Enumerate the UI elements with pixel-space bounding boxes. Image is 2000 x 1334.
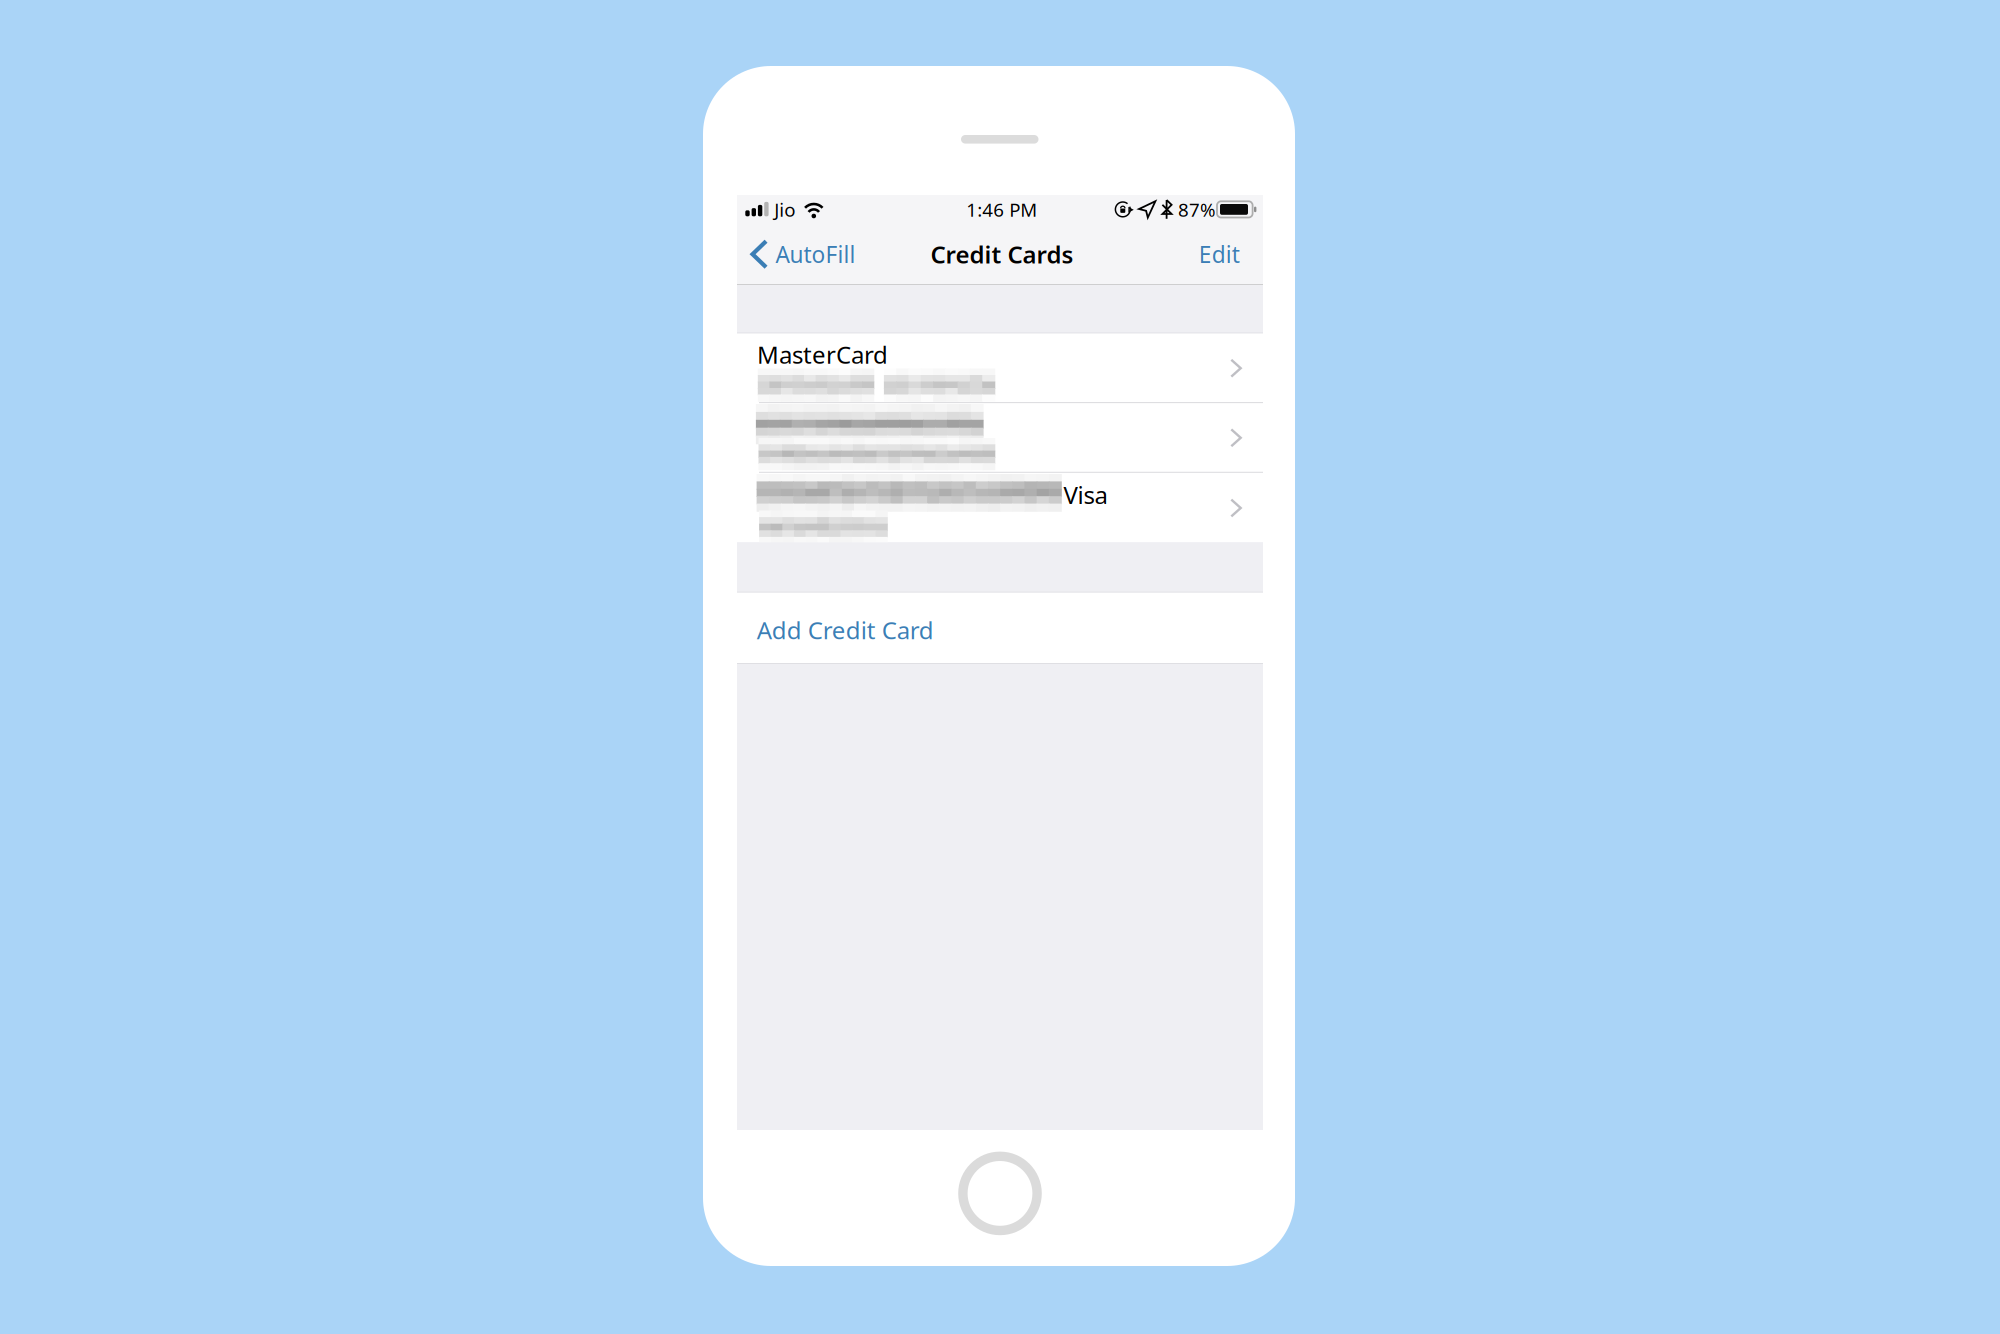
staticText: Add Credit Card	[757, 614, 934, 646]
button[interactable]: Home	[0, 0, 2000, 1334]
staticText: MasterCard	[757, 339, 888, 370]
staticText: AutoFill	[775, 239, 855, 269]
button[interactable]: Saved card	[0, 0, 2000, 1334]
staticText: Jio	[774, 197, 795, 222]
staticText: 87%	[1178, 197, 1216, 222]
button[interactable]: Add Credit Card	[0, 0, 2000, 1334]
button[interactable]: MasterCard	[0, 0, 2000, 1334]
staticText: Edit	[1199, 239, 1240, 269]
staticText: Visa	[1064, 479, 1108, 511]
staticText: Credit Cards	[930, 238, 1073, 270]
button[interactable]: Back to AutoFill	[0, 0, 2000, 1334]
button[interactable]: Edit	[0, 0, 2000, 1334]
button[interactable]: Visa	[0, 0, 2000, 1334]
staticText: 1:46 PM	[966, 197, 1037, 222]
